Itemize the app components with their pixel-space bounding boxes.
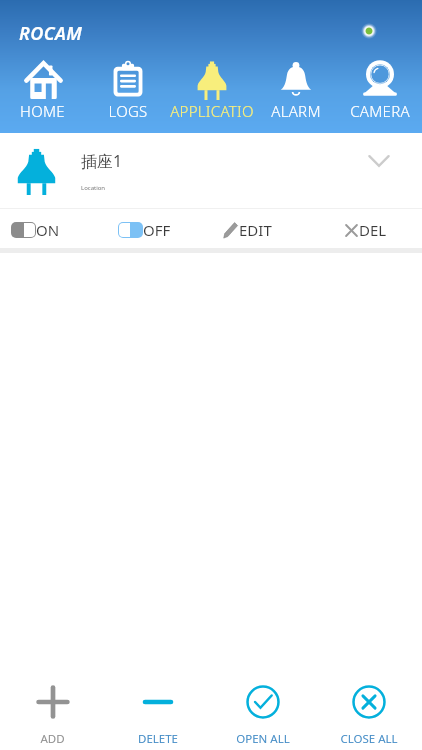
staticText: APPLICATION [170, 101, 254, 121]
staticText: ADD [40, 731, 65, 747]
staticText: LOGS [108, 101, 148, 121]
staticText: 插座1 [81, 150, 123, 172]
button[interactable]: Expand [362, 144, 396, 178]
button[interactable]: CAMERA [338, 57, 422, 127]
button[interactable]: LOGS [85, 57, 170, 127]
staticText: ALARM [271, 101, 321, 121]
staticText: Location [81, 184, 106, 192]
button[interactable]: ADD [0, 670, 105, 750]
button[interactable]: ALARM [254, 57, 338, 127]
button[interactable]: EDIT [211, 209, 317, 248]
staticText: DELETE [138, 731, 178, 747]
button[interactable]: Connection status [355, 17, 383, 45]
staticText: HOME [20, 101, 65, 121]
staticText: ON [36, 220, 60, 240]
button[interactable]: 插座1 [0, 133, 422, 208]
staticText: CLOSE ALL [340, 731, 398, 747]
button[interactable]: OFF [106, 209, 212, 248]
button[interactable]: DEL [317, 209, 422, 248]
staticText: EDIT [239, 220, 272, 240]
button[interactable]: DELETE [105, 670, 210, 750]
button[interactable]: OPEN ALL [210, 670, 316, 750]
staticText: ROCAM [19, 21, 83, 46]
button[interactable]: CLOSE ALL [316, 670, 422, 750]
staticText: CAMERA [350, 101, 410, 121]
staticText: OPEN ALL [236, 731, 290, 747]
staticText: OFF [143, 220, 171, 240]
button[interactable]: ON [0, 209, 106, 248]
button[interactable]: HOME [0, 57, 85, 127]
button[interactable]: APPLICATION [170, 57, 254, 127]
staticText: DEL [359, 220, 387, 240]
